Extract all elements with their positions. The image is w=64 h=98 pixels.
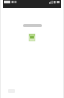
button[interactable]: App icon xyxy=(29,34,35,41)
other: Status bar xyxy=(3,0,61,8)
button[interactable]: Search xyxy=(23,24,42,27)
